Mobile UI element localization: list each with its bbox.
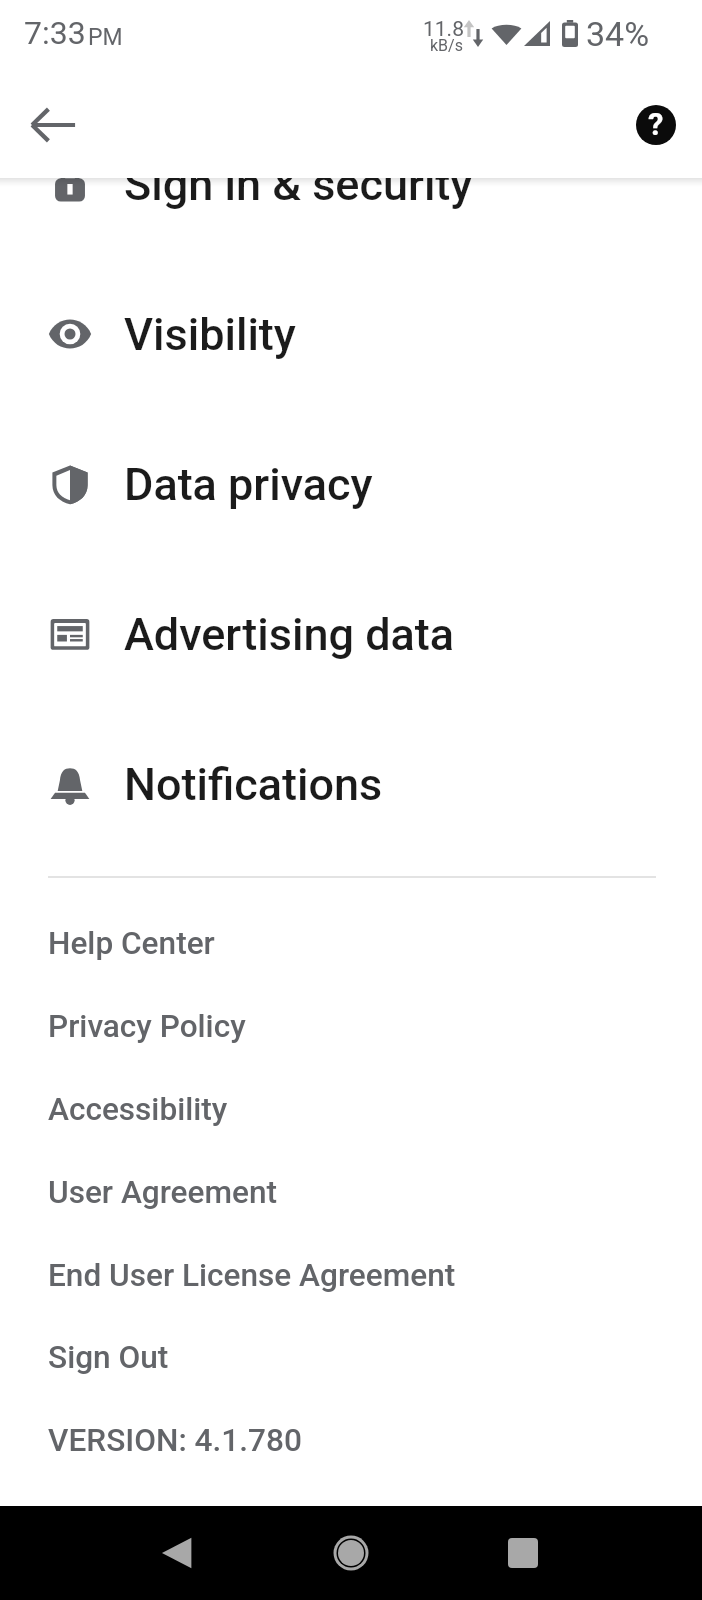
button[interactable]: VERSION: 4.1.780 [0,1399,702,1481]
button[interactable]: Recents [488,1518,558,1588]
staticText: Sign in & security [124,158,473,211]
button[interactable]: Back [21,93,85,157]
staticText: Help Center [48,925,215,962]
button[interactable]: Help Center [0,902,702,984]
staticText: ? [648,106,664,142]
staticText: VERSION: 4.1.780 [48,1422,302,1459]
button[interactable]: Visibility [0,259,702,409]
button[interactable]: Home [316,1518,386,1588]
staticText: Advertising data [124,608,455,661]
button[interactable]: Notifications [0,709,702,859]
staticText: Data privacy [124,458,373,511]
staticText: Privacy Policy [48,1008,246,1045]
staticText: User Agreement [48,1174,278,1211]
button[interactable]: User Agreement [0,1151,702,1233]
button[interactable]: Back [142,1518,212,1588]
staticText: kB/s [430,36,463,55]
staticText: Visibility [124,308,296,361]
staticText: PM [88,24,123,51]
staticText: Sign Out [48,1339,169,1376]
staticText: 34% [586,14,650,54]
staticText: Notifications [124,758,383,811]
button[interactable]: Data privacy [0,409,702,559]
button[interactable]: Advertising data [0,559,702,709]
button[interactable]: Sign Out [0,1316,702,1398]
staticText: 11.8 [423,17,464,42]
button[interactable]: Privacy Policy [0,985,702,1067]
staticText: Accessibility [48,1091,228,1128]
button[interactable]: Sign in & security [0,109,702,259]
button[interactable]: Accessibility [0,1068,702,1150]
staticText: 7:33 [24,14,86,52]
button[interactable]: End User License Agreement [0,1234,702,1316]
staticText: End User License Agreement [48,1257,456,1294]
button[interactable]: Help [626,95,686,155]
